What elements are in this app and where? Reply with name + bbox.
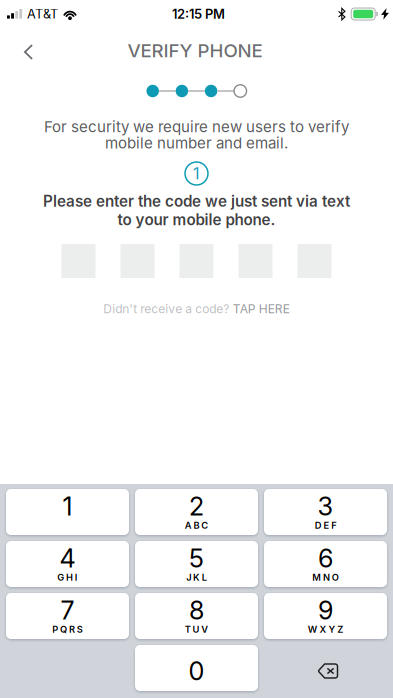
staticText: 1	[193, 164, 200, 183]
staticText: 8	[189, 595, 204, 626]
staticText: 5	[189, 543, 204, 574]
button[interactable]: 2	[135, 489, 258, 535]
staticText: Didn't receive a code?	[103, 302, 229, 316]
staticText: For security we require new users to ver…	[44, 118, 349, 136]
staticText: mobile number and email.	[105, 134, 288, 152]
button[interactable]: 5	[135, 541, 258, 587]
staticText: 3	[317, 491, 333, 522]
button[interactable]: 7	[6, 593, 129, 639]
staticText: 12:15 PM	[172, 6, 225, 22]
staticText: 4	[59, 543, 75, 574]
staticText: 0	[188, 656, 204, 686]
button[interactable]: 4	[6, 541, 129, 587]
staticText: 6	[318, 543, 333, 574]
staticText: 2	[189, 491, 204, 522]
staticText: MNO	[312, 572, 339, 583]
staticText: TAP HERE	[233, 302, 290, 316]
button[interactable]: 1	[6, 489, 129, 535]
staticText: VERIFY PHONE	[127, 39, 262, 62]
staticText: PQRS	[52, 624, 83, 635]
staticText: to your mobile phone.	[117, 210, 275, 229]
staticText: 9	[318, 595, 333, 626]
staticText: GHI	[57, 572, 78, 583]
button[interactable]: Didn't receive a code?	[89, 294, 304, 324]
button[interactable]: 9	[264, 593, 387, 639]
button[interactable]: Back	[0, 31, 52, 67]
staticText: JKL	[186, 572, 207, 583]
button[interactable]: Delete	[264, 645, 387, 691]
staticText: ABC	[185, 520, 208, 531]
staticText: WXYZ	[308, 624, 343, 635]
button[interactable]: 6	[264, 541, 387, 587]
button[interactable]: 3	[264, 489, 387, 535]
staticText: 1	[62, 491, 72, 522]
button[interactable]: 8	[135, 593, 258, 639]
staticText: 7	[60, 595, 74, 626]
button[interactable]: 0	[135, 645, 258, 691]
staticText: Please enter the code we just sent via t…	[43, 192, 350, 210]
staticText: AT&T	[27, 6, 58, 22]
staticText: TUV	[185, 624, 208, 635]
staticText: DEF	[315, 520, 336, 531]
